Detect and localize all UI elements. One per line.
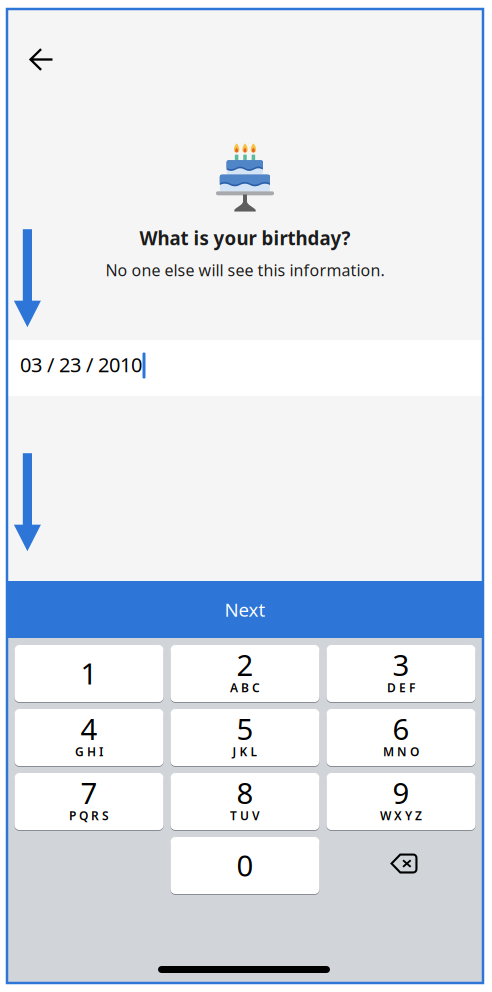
staticText: No one else will see this information. <box>105 259 384 281</box>
staticText: P Q R S <box>69 807 109 823</box>
button[interactable]: 6 <box>326 709 475 766</box>
button[interactable]: 8 <box>170 773 319 830</box>
staticText: 5 <box>236 709 253 748</box>
staticText: What is your birthday? <box>139 226 350 250</box>
button[interactable]: 2 <box>170 645 319 702</box>
staticText: D E F <box>387 679 415 695</box>
staticText: T U V <box>230 807 260 823</box>
staticText: 3 <box>392 645 409 684</box>
staticText: 8 <box>236 773 253 812</box>
staticText: 2 <box>236 645 253 684</box>
staticText: 03 / 23 / 2010 <box>20 351 142 378</box>
button[interactable]: 9 <box>326 773 475 830</box>
staticText: W X Y Z <box>380 807 422 823</box>
staticText: 9 <box>392 773 409 812</box>
button[interactable]: 3 <box>326 645 475 702</box>
button[interactable]: 0 <box>170 837 319 894</box>
button[interactable]: 5 <box>170 709 319 766</box>
staticText: 0 <box>236 845 253 884</box>
button[interactable]: Next <box>7 581 483 638</box>
staticText: G H I <box>75 743 103 759</box>
button[interactable]: Delete <box>326 837 475 894</box>
staticText: J K L <box>232 743 257 759</box>
staticText: 1 <box>80 653 97 692</box>
button[interactable]: 7 <box>14 773 163 830</box>
button[interactable]: 4 <box>14 709 163 766</box>
staticText: Next <box>224 597 265 622</box>
staticText: A B C <box>230 679 260 695</box>
staticText: 6 <box>392 709 409 748</box>
staticText: M N O <box>383 743 419 759</box>
staticText: 7 <box>80 773 97 812</box>
staticText: 4 <box>80 709 97 748</box>
button[interactable]: 1 <box>14 645 163 702</box>
button[interactable]: Back <box>15 36 67 82</box>
